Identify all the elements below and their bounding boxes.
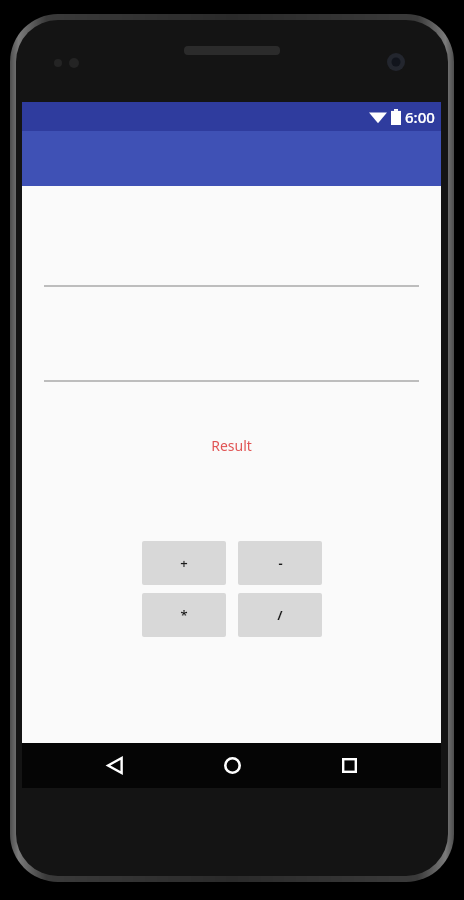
staticText: +	[180, 554, 188, 572]
staticText: -	[278, 554, 283, 572]
staticText: *	[180, 606, 188, 624]
button[interactable]: Recent apps	[323, 743, 375, 788]
button[interactable]: *	[142, 593, 226, 637]
staticText: Result	[211, 436, 252, 455]
button[interactable]: -	[238, 541, 322, 585]
staticText: 6:00	[405, 107, 435, 127]
button[interactable]: +	[142, 541, 226, 585]
staticText: /	[277, 606, 283, 624]
button[interactable]: /	[238, 593, 322, 637]
button[interactable]: Back	[88, 743, 140, 788]
button[interactable]: Home	[206, 743, 258, 788]
